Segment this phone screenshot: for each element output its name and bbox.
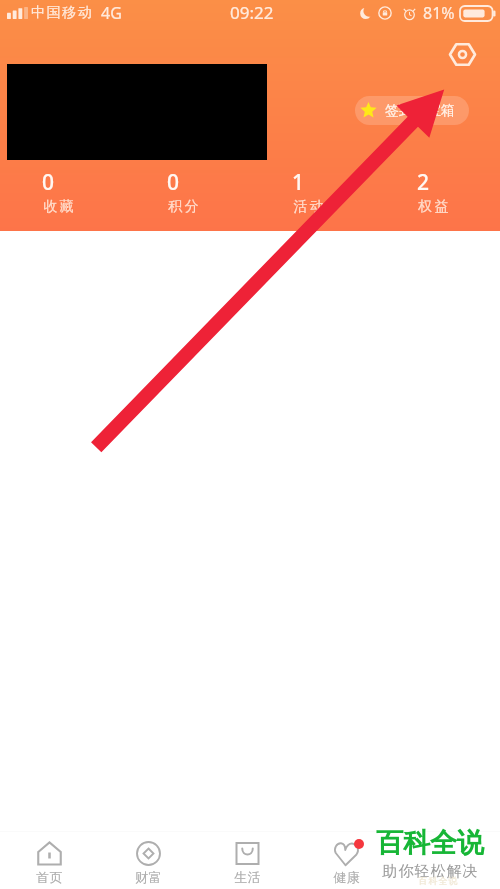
staticText: 助你轻松解决 — [382, 862, 478, 881]
button[interactable]: Settings — [446, 38, 479, 71]
staticText: 0 — [42, 168, 55, 197]
staticText: 1 — [292, 168, 305, 197]
staticText: 2 — [417, 168, 430, 197]
button[interactable]: 签到领宝箱 — [355, 96, 469, 125]
staticText: 百科全说 — [418, 875, 458, 886]
staticText: 生活 — [234, 869, 261, 885]
button[interactable]: 生活 — [198, 834, 297, 889]
button[interactable]: 健康 — [297, 834, 396, 889]
staticText: 收藏 — [42, 198, 75, 216]
button[interactable]: 首页 — [0, 834, 99, 889]
staticText: 健康 — [333, 869, 360, 885]
staticText: 权益 — [417, 198, 450, 216]
staticText: 09:22 — [230, 1, 274, 24]
staticText: 活动 — [292, 198, 325, 216]
button[interactable]: 0 — [125, 170, 250, 218]
staticText: 中国移动 — [31, 4, 94, 22]
button[interactable]: 0 — [0, 170, 125, 218]
button[interactable]: 2 — [375, 170, 500, 218]
button[interactable]: 1 — [250, 170, 375, 218]
staticText: 4G — [101, 2, 122, 24]
staticText: 百科全说 — [376, 826, 484, 860]
staticText: 签到领宝箱 — [385, 102, 455, 120]
staticText: 81% — [423, 2, 455, 24]
button[interactable]: 财富 — [99, 834, 198, 889]
staticText: 0 — [167, 168, 180, 197]
staticText: 财富 — [135, 869, 162, 885]
staticText: 首页 — [36, 869, 63, 885]
staticText: 积分 — [167, 198, 200, 216]
